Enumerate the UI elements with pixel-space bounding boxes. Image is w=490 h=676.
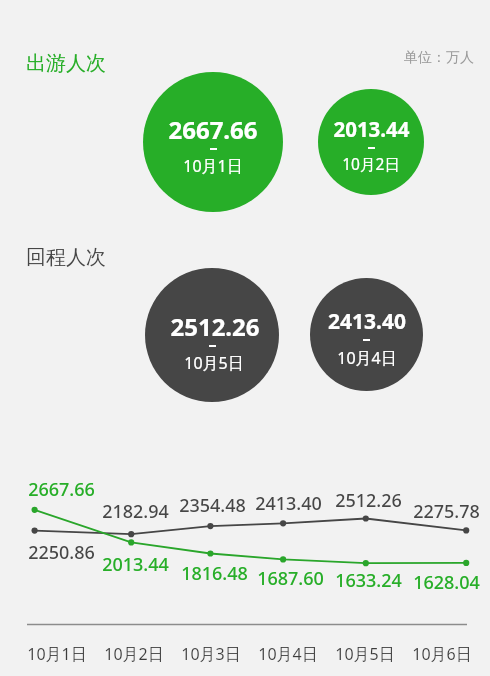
staticText: 2354.48	[179, 493, 246, 518]
staticText: 10月1日	[27, 643, 87, 665]
staticText: 2275.78	[413, 499, 480, 524]
staticText: 10月4日	[258, 643, 318, 665]
staticText: 单位：万人	[404, 49, 474, 67]
staticText: 1633.24	[335, 568, 402, 593]
staticText: 2413.40	[328, 307, 406, 336]
staticText: 2667.66	[28, 477, 95, 502]
staticText: 2512.26	[335, 488, 402, 513]
staticText: 10月5日	[335, 643, 395, 665]
button[interactable]: 2667.66 10月1日	[143, 72, 283, 212]
button[interactable]: 回程人次	[26, 245, 106, 269]
button[interactable]: 出游人次	[26, 51, 106, 75]
staticText: 10月6日	[412, 643, 472, 665]
button[interactable]: 2512.26 10月5日	[145, 268, 279, 402]
staticText: 2512.26	[170, 310, 260, 343]
staticText: 1628.04	[413, 570, 480, 595]
staticText: 2413.40	[255, 491, 322, 516]
staticText: 10月2日	[104, 643, 164, 665]
staticText: 2667.66	[168, 113, 258, 146]
staticText: 回程人次	[26, 245, 106, 269]
staticText: 2250.86	[28, 540, 95, 565]
button[interactable]: 2013.44 10月2日	[318, 89, 424, 195]
staticText: 1687.60	[257, 566, 324, 591]
staticText: 10月4日	[337, 347, 397, 369]
button[interactable]: 2413.40 10月4日	[310, 278, 423, 391]
staticText: 10月1日	[183, 155, 243, 177]
staticText: 2182.94	[102, 499, 169, 524]
staticText: 2013.44	[102, 552, 169, 577]
staticText: 10月3日	[181, 643, 241, 665]
staticText: 10月2日	[342, 153, 400, 174]
staticText: 2013.44	[333, 115, 410, 143]
staticText: 1816.48	[181, 561, 248, 586]
staticText: 10月5日	[184, 352, 244, 374]
staticText: 出游人次	[26, 51, 106, 75]
